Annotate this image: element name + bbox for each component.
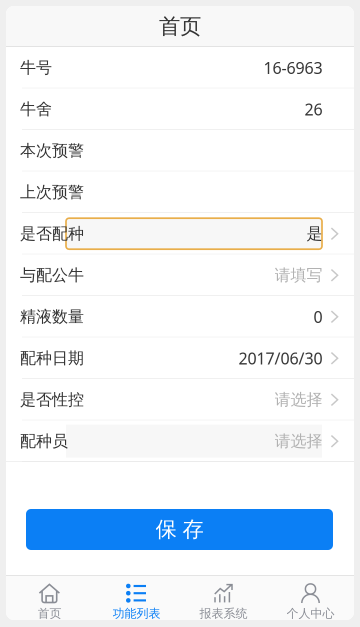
button[interactable]: 牛号 (6, 47, 354, 88)
button[interactable]: 精液数量 (6, 296, 354, 337)
button[interactable]: 是否性控 (6, 379, 354, 420)
staticText: 配种日期 (20, 348, 84, 368)
staticText: 16-6963 (263, 57, 322, 78)
button[interactable]: 配种日期 (6, 337, 354, 379)
staticText: 精液数量 (20, 307, 84, 327)
staticText: 请填写 (274, 265, 322, 285)
button[interactable]: 首页 (6, 576, 93, 620)
staticText: 功能列表 (112, 606, 160, 621)
staticText: 个人中心 (286, 606, 334, 621)
staticText: 26 (304, 99, 322, 120)
button[interactable]: 是否配种 (6, 213, 354, 254)
staticText: 与配公牛 (20, 265, 84, 285)
staticText: 配种员 (20, 431, 68, 451)
staticText: 是否性控 (20, 390, 84, 410)
staticText: 牛号 (20, 58, 52, 78)
button[interactable]: 功能列表 (93, 576, 180, 620)
button[interactable]: 上次预警 (6, 171, 354, 213)
staticText: 是 (306, 224, 322, 244)
button[interactable]: 保 存 (26, 509, 333, 550)
staticText: 首页 (37, 606, 61, 621)
button[interactable]: 个人中心 (267, 576, 354, 620)
button[interactable]: 牛舍 (6, 88, 354, 130)
staticText: 首页 (159, 13, 201, 40)
staticText: 本次预警 (20, 141, 84, 161)
staticText: 是否配种 (20, 224, 84, 244)
staticText: 0 (313, 306, 322, 327)
staticText: 请选择 (274, 390, 322, 410)
staticText: 牛舍 (20, 99, 52, 119)
button[interactable]: 与配公牛 (6, 254, 354, 296)
staticText: 保 存 (155, 516, 203, 543)
button[interactable]: 本次预警 (6, 130, 354, 171)
staticText: 请选择 (274, 431, 322, 451)
button[interactable]: 报表系统 (180, 576, 267, 620)
staticText: 上次预警 (20, 182, 84, 202)
staticText: 2017/06/30 (238, 348, 322, 369)
button[interactable]: 配种员 (6, 420, 354, 462)
staticText: 报表系统 (199, 606, 247, 621)
